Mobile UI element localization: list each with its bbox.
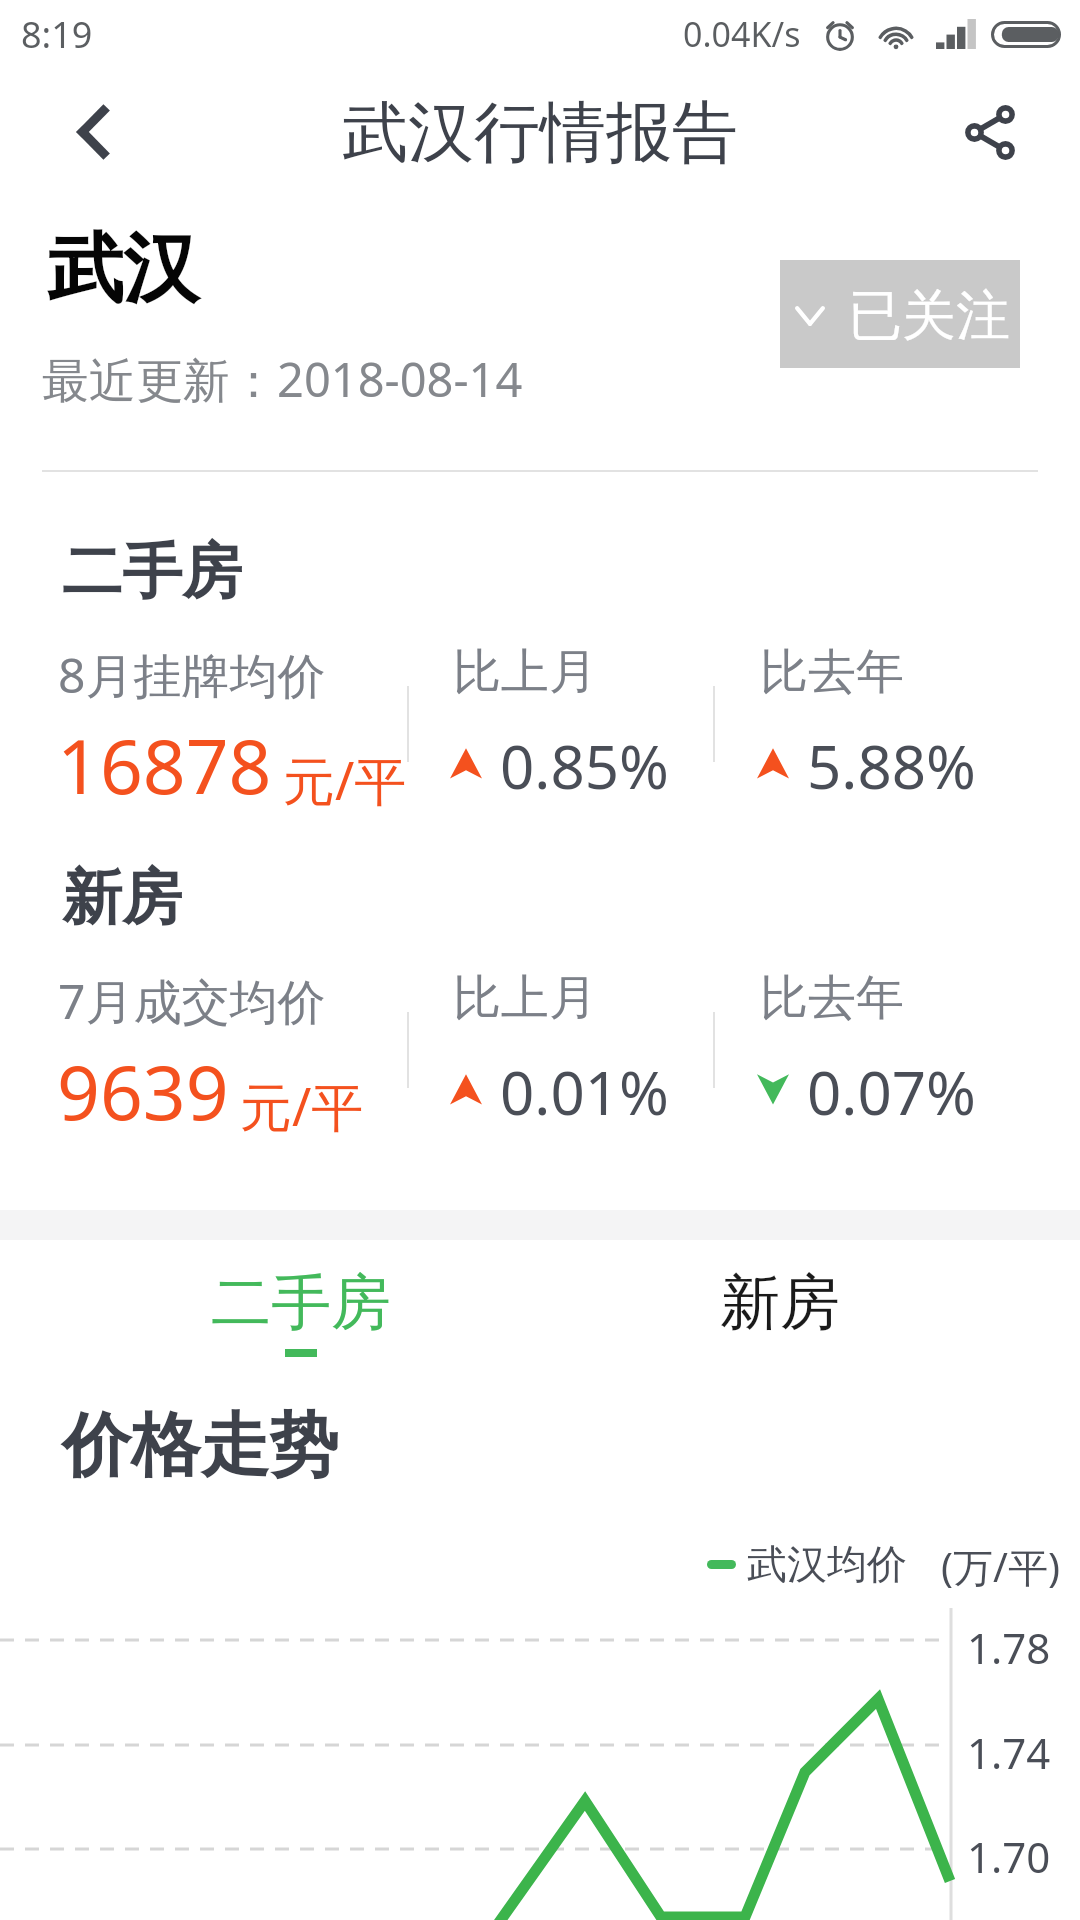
staticText: 16878 <box>57 714 272 816</box>
staticText: 元/平 <box>240 1070 364 1141</box>
staticText: 比上月 <box>453 968 597 1028</box>
staticText: 已关注 <box>848 282 1010 350</box>
staticText: 1.78 <box>967 1619 1051 1676</box>
staticText: 元/平 <box>283 744 407 815</box>
staticText: 新房 <box>720 1265 840 1341</box>
staticText: 0.01% <box>500 1051 669 1133</box>
button[interactable]: Share <box>900 68 1080 196</box>
staticText: 比上月 <box>453 642 597 702</box>
staticText: 武汉均价 <box>747 1539 907 1589</box>
staticText: (万/平) <box>941 1539 1060 1594</box>
staticText: 9639 <box>57 1040 229 1142</box>
staticText: 0.07% <box>807 1051 976 1133</box>
button[interactable]: 二手房 <box>151 1240 451 1380</box>
button[interactable]: 新房 <box>630 1240 930 1380</box>
staticText: 二手房 <box>62 534 242 610</box>
button[interactable]: Back <box>0 68 186 196</box>
staticText: 武汉 <box>47 222 199 318</box>
staticText: 最近更新：2018-08-14 <box>42 347 523 411</box>
staticText: 8:19 <box>21 10 93 59</box>
staticText: 0.85% <box>500 725 669 807</box>
staticText: 价格走势 <box>62 1403 338 1490</box>
staticText: 7月成交均价 <box>58 968 326 1034</box>
staticText: 比去年 <box>760 642 904 702</box>
staticText: 新房 <box>62 860 182 936</box>
staticText: 比去年 <box>760 968 904 1028</box>
staticText: 1.74 <box>967 1724 1051 1781</box>
staticText: 5.88% <box>807 725 976 807</box>
button[interactable]: 已关注 <box>780 260 1020 368</box>
staticText: 1.70 <box>967 1828 1051 1885</box>
staticText: 8月挂牌均价 <box>58 642 326 708</box>
staticText: 0.04K/s <box>683 11 801 57</box>
staticText: 二手房 <box>211 1265 391 1341</box>
staticText: 武汉行情报告 <box>342 91 738 174</box>
